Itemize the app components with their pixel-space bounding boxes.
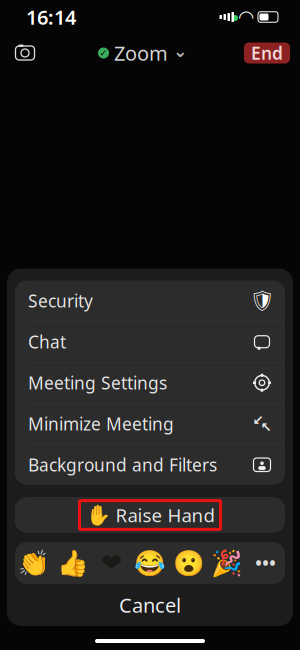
staticText: 👍 bbox=[57, 548, 89, 577]
button[interactable]: Surprised bbox=[169, 542, 208, 584]
button[interactable]: Heart bbox=[92, 542, 131, 584]
staticText: Zoom bbox=[114, 40, 168, 66]
staticText: ◠ bbox=[239, 6, 253, 28]
staticText: 16:14 bbox=[26, 4, 76, 30]
button[interactable]: ✋ bbox=[15, 497, 285, 533]
button[interactable]: Thumbs Up bbox=[54, 542, 92, 584]
button[interactable]: Cancel bbox=[7, 586, 293, 624]
staticText: Cancel bbox=[119, 592, 181, 618]
staticText: Chat bbox=[28, 330, 66, 353]
staticText: ••• bbox=[255, 551, 276, 574]
staticText: 👏 bbox=[18, 548, 50, 577]
staticText: Background and Filters bbox=[28, 453, 217, 476]
staticText: 😂 bbox=[134, 548, 166, 577]
button[interactable]: ✓ bbox=[92, 36, 194, 70]
staticText: Minimize Meeting bbox=[28, 412, 174, 435]
staticText: ❤ bbox=[101, 549, 122, 577]
staticText: Security bbox=[28, 289, 93, 312]
staticText: Meeting Settings bbox=[28, 371, 167, 394]
button[interactable]: Laugh bbox=[131, 542, 169, 584]
button[interactable]: Security bbox=[15, 280, 285, 321]
button[interactable]: Clap bbox=[15, 542, 54, 584]
staticText: ✓ bbox=[99, 48, 107, 58]
button[interactable]: Minimize Meeting bbox=[15, 403, 285, 444]
button[interactable]: Celebrate bbox=[208, 542, 246, 584]
staticText: ⌄ bbox=[173, 41, 188, 61]
button[interactable]: Background and Filters bbox=[15, 444, 285, 485]
button[interactable]: More Reactions bbox=[246, 542, 285, 584]
button[interactable]: Meeting Settings bbox=[15, 362, 285, 403]
staticText: 🛡 bbox=[249, 289, 274, 312]
staticText: ✋ bbox=[85, 504, 110, 526]
staticText: ↖ bbox=[260, 420, 271, 435]
staticText: End bbox=[251, 41, 283, 64]
staticText: 😮 bbox=[173, 548, 205, 577]
button[interactable]: Switch Camera bbox=[8, 38, 42, 68]
button[interactable]: Chat bbox=[15, 321, 285, 362]
button[interactable]: End bbox=[244, 42, 290, 63]
staticText: ↙ bbox=[252, 413, 263, 428]
staticText: Raise Hand bbox=[115, 503, 214, 527]
staticText: 🎉 bbox=[211, 548, 243, 577]
